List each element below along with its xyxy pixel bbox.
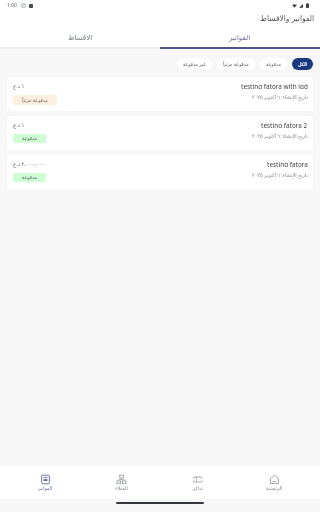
staticText: تذاكر — [193, 486, 203, 491]
staticText: مدفوعة جزئياً — [223, 61, 249, 67]
staticText: testing fatora 2 — [261, 121, 308, 128]
button[interactable]: الاقساط — [0, 30, 160, 49]
staticText: الكل — [298, 62, 307, 67]
button[interactable]: ١ د.ع — [7, 77, 313, 111]
button[interactable]: ١ د.ع — [7, 116, 313, 150]
staticText: غير مدفوعة — [183, 61, 206, 67]
staticText: testing fatora with iqd — [241, 82, 308, 89]
staticText: تاريخ الإنشاء: ٦ أكتوبر ٢٠٢٥ — [252, 94, 308, 101]
staticText: مدفوعة — [22, 136, 37, 141]
button[interactable]: تذاكر — [159, 472, 236, 493]
button[interactable]: مدفوعة — [260, 58, 287, 70]
staticText: ١ د.ع — [13, 82, 25, 89]
staticText: 1:00 — [7, 2, 17, 9]
button[interactable]: مدفوعة جزئياً — [217, 58, 255, 70]
button[interactable]: العملاء — [83, 472, 159, 493]
staticText: الفواتير — [229, 34, 251, 42]
button[interactable]: الكل — [292, 58, 313, 70]
staticText: مدفوعة — [22, 175, 37, 180]
staticText: مدفوعة — [266, 62, 281, 67]
staticText: ٢,٠٠٠,٠٠٠ د.ع — [13, 160, 45, 167]
staticText: الفواتير والاقساط — [260, 13, 315, 23]
button[interactable]: ٢,٠٠٠,٠٠٠ د.ع — [7, 155, 313, 189]
staticText: ١ د.ع — [13, 121, 25, 128]
staticText: تاريخ الإنشاء: ٦ أكتوبر ٢٠٢٥ — [252, 133, 308, 140]
button[interactable]: الفواتير — [7, 472, 83, 493]
staticText: testing fatora — [267, 160, 308, 167]
staticText: مدفوعة جزئياً — [22, 97, 48, 103]
staticText: الفواتير — [38, 486, 53, 491]
button[interactable]: غير مدفوعة — [177, 58, 212, 70]
staticText: الاقساط — [68, 34, 93, 42]
button[interactable]: الفواتير — [160, 30, 320, 49]
staticText: العملاء — [115, 486, 128, 491]
staticText: تاريخ الإنشاء: ٦ أكتوبر ٢٠٢٥ — [252, 172, 308, 179]
staticText: الرئيسية — [266, 486, 283, 491]
button[interactable]: الرئيسية — [236, 472, 313, 493]
